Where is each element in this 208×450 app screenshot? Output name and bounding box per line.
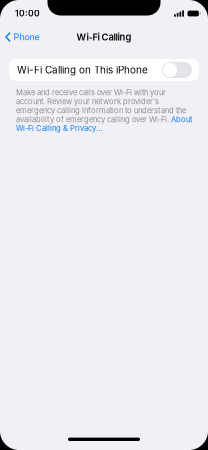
staticText: 10:00 — [15, 8, 40, 19]
button[interactable]: Phone — [0, 27, 46, 47]
staticText: Wi-Fi Calling — [76, 31, 131, 43]
button[interactable]: Wi-Fi Calling on This iPhone — [9, 59, 199, 81]
staticText: Phone — [14, 32, 40, 42]
staticText: Make and receive calls over Wi-Fi with y… — [16, 88, 192, 133]
staticText: Wi-Fi Calling on This iPhone — [17, 64, 148, 76]
